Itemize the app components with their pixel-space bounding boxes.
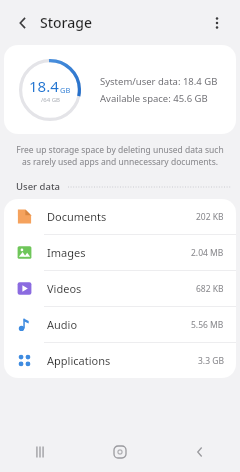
staticText: 682 KB	[196, 283, 224, 295]
button[interactable]: Audio	[4, 307, 236, 342]
staticText: 202 KB	[196, 211, 224, 223]
staticText: Storage	[40, 13, 92, 32]
button[interactable]: Back	[160, 432, 240, 472]
staticText: User data	[16, 180, 60, 193]
staticText: Documents	[47, 209, 196, 224]
staticText: System/user data: 18.4 GB	[100, 75, 218, 88]
staticText: Available space: 45.6 GB	[100, 92, 208, 105]
staticText: Free up storage space by deleting unused…	[16, 144, 224, 168]
staticText: Videos	[47, 281, 196, 296]
button[interactable]: Videos	[4, 271, 236, 306]
button[interactable]: Back	[6, 6, 40, 40]
button[interactable]: More options	[200, 6, 234, 40]
button[interactable]: Applications	[4, 343, 236, 378]
button[interactable]: Images	[4, 235, 236, 270]
staticText: Audio	[47, 317, 191, 332]
staticText: GB	[60, 85, 71, 95]
button[interactable]: Home	[80, 432, 160, 472]
staticText: 3.3 GB	[198, 355, 224, 367]
staticText: Images	[47, 245, 191, 260]
staticText: /64 GB	[41, 96, 60, 104]
staticText: 5.56 MB	[191, 319, 224, 331]
button[interactable]: Documents	[4, 199, 236, 234]
staticText: 18.4	[29, 76, 59, 96]
staticText: Applications	[47, 353, 198, 368]
button[interactable]: Recents	[0, 432, 80, 472]
staticText: 2.04 MB	[191, 247, 224, 259]
